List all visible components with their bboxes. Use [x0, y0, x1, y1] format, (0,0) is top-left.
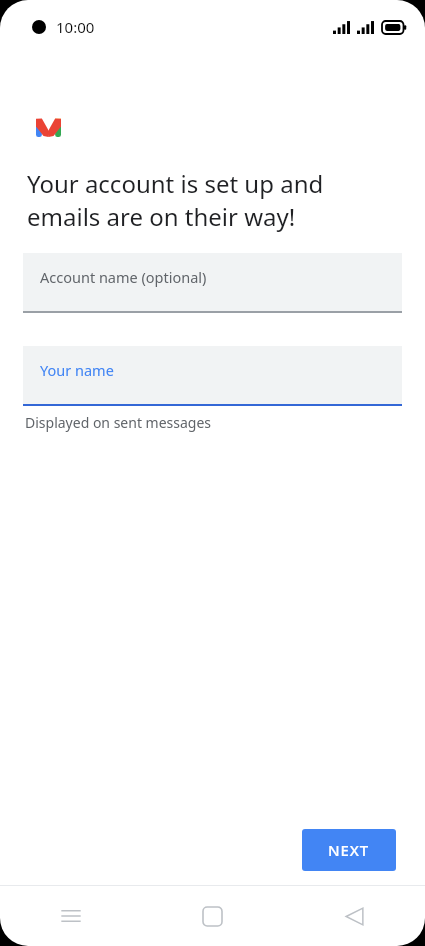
- button[interactable]: Home: [141, 886, 283, 946]
- staticText: Your account is set up and emails are on…: [27, 167, 324, 233]
- staticText: Account name (optional): [40, 267, 207, 287]
- staticText: Your name: [40, 360, 114, 380]
- button[interactable]: Your name: [23, 346, 402, 406]
- button[interactable]: Recent apps: [0, 886, 141, 946]
- staticText: 10:00: [56, 17, 95, 37]
- button[interactable]: Back: [283, 886, 425, 946]
- button[interactable]: Account name (optional): [23, 253, 402, 313]
- other: Gmail: [36, 118, 61, 137]
- staticText: NEXT: [328, 840, 370, 860]
- button[interactable]: NEXT: [302, 829, 396, 871]
- staticText: Displayed on sent messages: [25, 413, 212, 432]
